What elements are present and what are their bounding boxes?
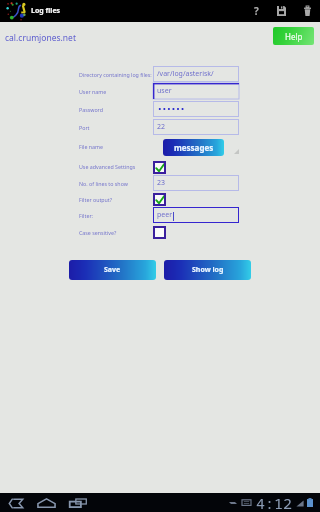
button[interactable]: Show log [164,260,251,280]
button[interactable]: Case sensitive? [153,226,166,239]
staticText: No. of lines to show [79,180,128,187]
staticText: cal.crumjones.net [5,32,76,44]
button[interactable]: Recents [64,494,91,512]
staticText: File name [79,143,104,150]
button[interactable]: Help [247,2,265,20]
button[interactable]: Delete [298,2,316,20]
button[interactable]: Home [32,494,61,512]
staticText: User name [79,88,107,95]
staticText: Filter output? [79,196,113,203]
button[interactable] [153,101,239,117]
staticText: Password [79,106,103,113]
staticText: Directory containing log files: [79,71,152,78]
staticText: messages [174,142,214,153]
button[interactable]: 22 [153,119,239,135]
button[interactable]: Use advanced Settings [153,161,166,174]
button[interactable]: messages [163,139,224,156]
staticText: 4:12 [256,493,293,512]
staticText: Save [104,265,121,275]
button[interactable]: Save [272,2,290,20]
staticText: Filter: [79,212,93,219]
button[interactable]: peer [153,207,239,223]
button[interactable]: 23 [153,175,239,191]
button[interactable]: /var/log/asterisk/ [153,66,239,82]
button[interactable]: Save [69,260,156,280]
staticText: Help [285,31,303,42]
staticText: user [157,86,172,96]
staticText: Use advanced Settings [79,163,136,170]
staticText: Case sensitive? [79,229,117,236]
button[interactable]: Filter output? [153,193,166,206]
staticText: /var/log/asterisk/ [157,69,214,79]
button[interactable]: Back [2,494,29,512]
staticText: 23 [157,178,166,188]
staticText: Log files [31,6,61,16]
staticText: peer [157,210,173,220]
staticText: 22 [157,122,166,132]
staticText: ? [254,4,259,18]
button[interactable]: user [153,83,239,99]
staticText: Show log [192,265,224,275]
button[interactable]: Help [273,27,314,45]
staticText: Port [79,124,90,131]
